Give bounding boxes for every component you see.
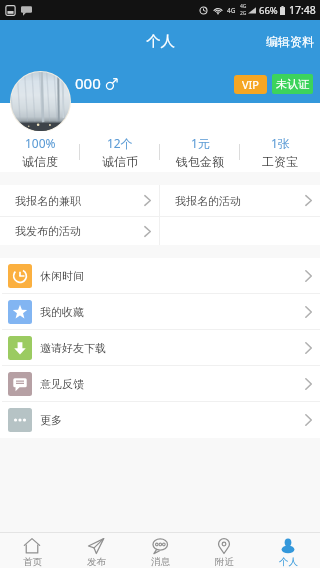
staticText: 诚信度 bbox=[22, 154, 58, 169]
staticText: 1元 bbox=[191, 135, 210, 151]
button[interactable]: 消息 bbox=[128, 532, 192, 568]
staticText: 首页 bbox=[23, 556, 42, 568]
button[interactable]: 我报名的活动 bbox=[160, 185, 320, 216]
button[interactable]: 100% bbox=[0, 131, 80, 172]
staticText: 消息 bbox=[151, 556, 170, 568]
staticText: 我的收藏 bbox=[40, 305, 84, 319]
button[interactable]: 1张 bbox=[240, 131, 320, 172]
staticText: 邀请好友下载 bbox=[40, 341, 106, 355]
staticText: 意见反馈 bbox=[40, 377, 84, 391]
button[interactable]: 我发布的活动 bbox=[0, 217, 159, 245]
button[interactable]: 更多 bbox=[0, 402, 320, 438]
staticText: 1张 bbox=[271, 135, 290, 151]
button[interactable]: 个人 bbox=[256, 532, 320, 568]
button[interactable]: 休闲时间 bbox=[0, 258, 320, 293]
staticText: 个人 bbox=[279, 556, 298, 568]
staticText: 未认证 bbox=[276, 77, 309, 91]
button[interactable]: 发布 bbox=[64, 532, 128, 568]
staticText: 4G bbox=[240, 3, 247, 10]
button[interactable]: VIP bbox=[234, 75, 267, 94]
staticText: 个人 bbox=[146, 32, 175, 50]
staticText: 12个 bbox=[107, 135, 133, 151]
button[interactable]: 1元 bbox=[160, 131, 240, 172]
staticText: 附近 bbox=[215, 556, 234, 568]
button[interactable]: 意见反馈 bbox=[0, 366, 320, 401]
staticText: 17:48 bbox=[289, 3, 316, 17]
staticText: 诚信币 bbox=[102, 154, 138, 169]
button[interactable]: 邀请好友下载 bbox=[0, 330, 320, 365]
staticText: 我报名的兼职 bbox=[15, 194, 81, 208]
staticText: 100% bbox=[25, 135, 56, 151]
button[interactable]: 我的收藏 bbox=[0, 294, 320, 329]
staticText: 4G bbox=[227, 6, 236, 15]
staticText: 000 bbox=[75, 73, 101, 93]
staticText: 2G bbox=[240, 10, 247, 17]
staticText: 更多 bbox=[40, 413, 62, 427]
staticText: 66% bbox=[259, 4, 278, 17]
staticText: 钱包金额 bbox=[176, 154, 224, 169]
staticText: 工资宝 bbox=[262, 154, 298, 169]
button[interactable]: 编辑资料 bbox=[260, 34, 320, 49]
button[interactable]: 12个 bbox=[80, 131, 160, 172]
button[interactable]: 我报名的兼职 bbox=[0, 185, 159, 216]
staticText: 休闲时间 bbox=[40, 269, 84, 283]
staticText: VIP bbox=[242, 77, 259, 92]
button[interactable]: 附近 bbox=[192, 532, 256, 568]
staticText: 发布 bbox=[87, 556, 106, 568]
staticText: 编辑资料 bbox=[266, 34, 314, 49]
button[interactable]: Profile photo bbox=[10, 71, 71, 132]
staticText: 我报名的活动 bbox=[175, 194, 241, 208]
button[interactable]: 首页 bbox=[0, 532, 64, 568]
button[interactable]: 未认证 bbox=[272, 74, 313, 94]
staticText: 我发布的活动 bbox=[15, 224, 81, 238]
